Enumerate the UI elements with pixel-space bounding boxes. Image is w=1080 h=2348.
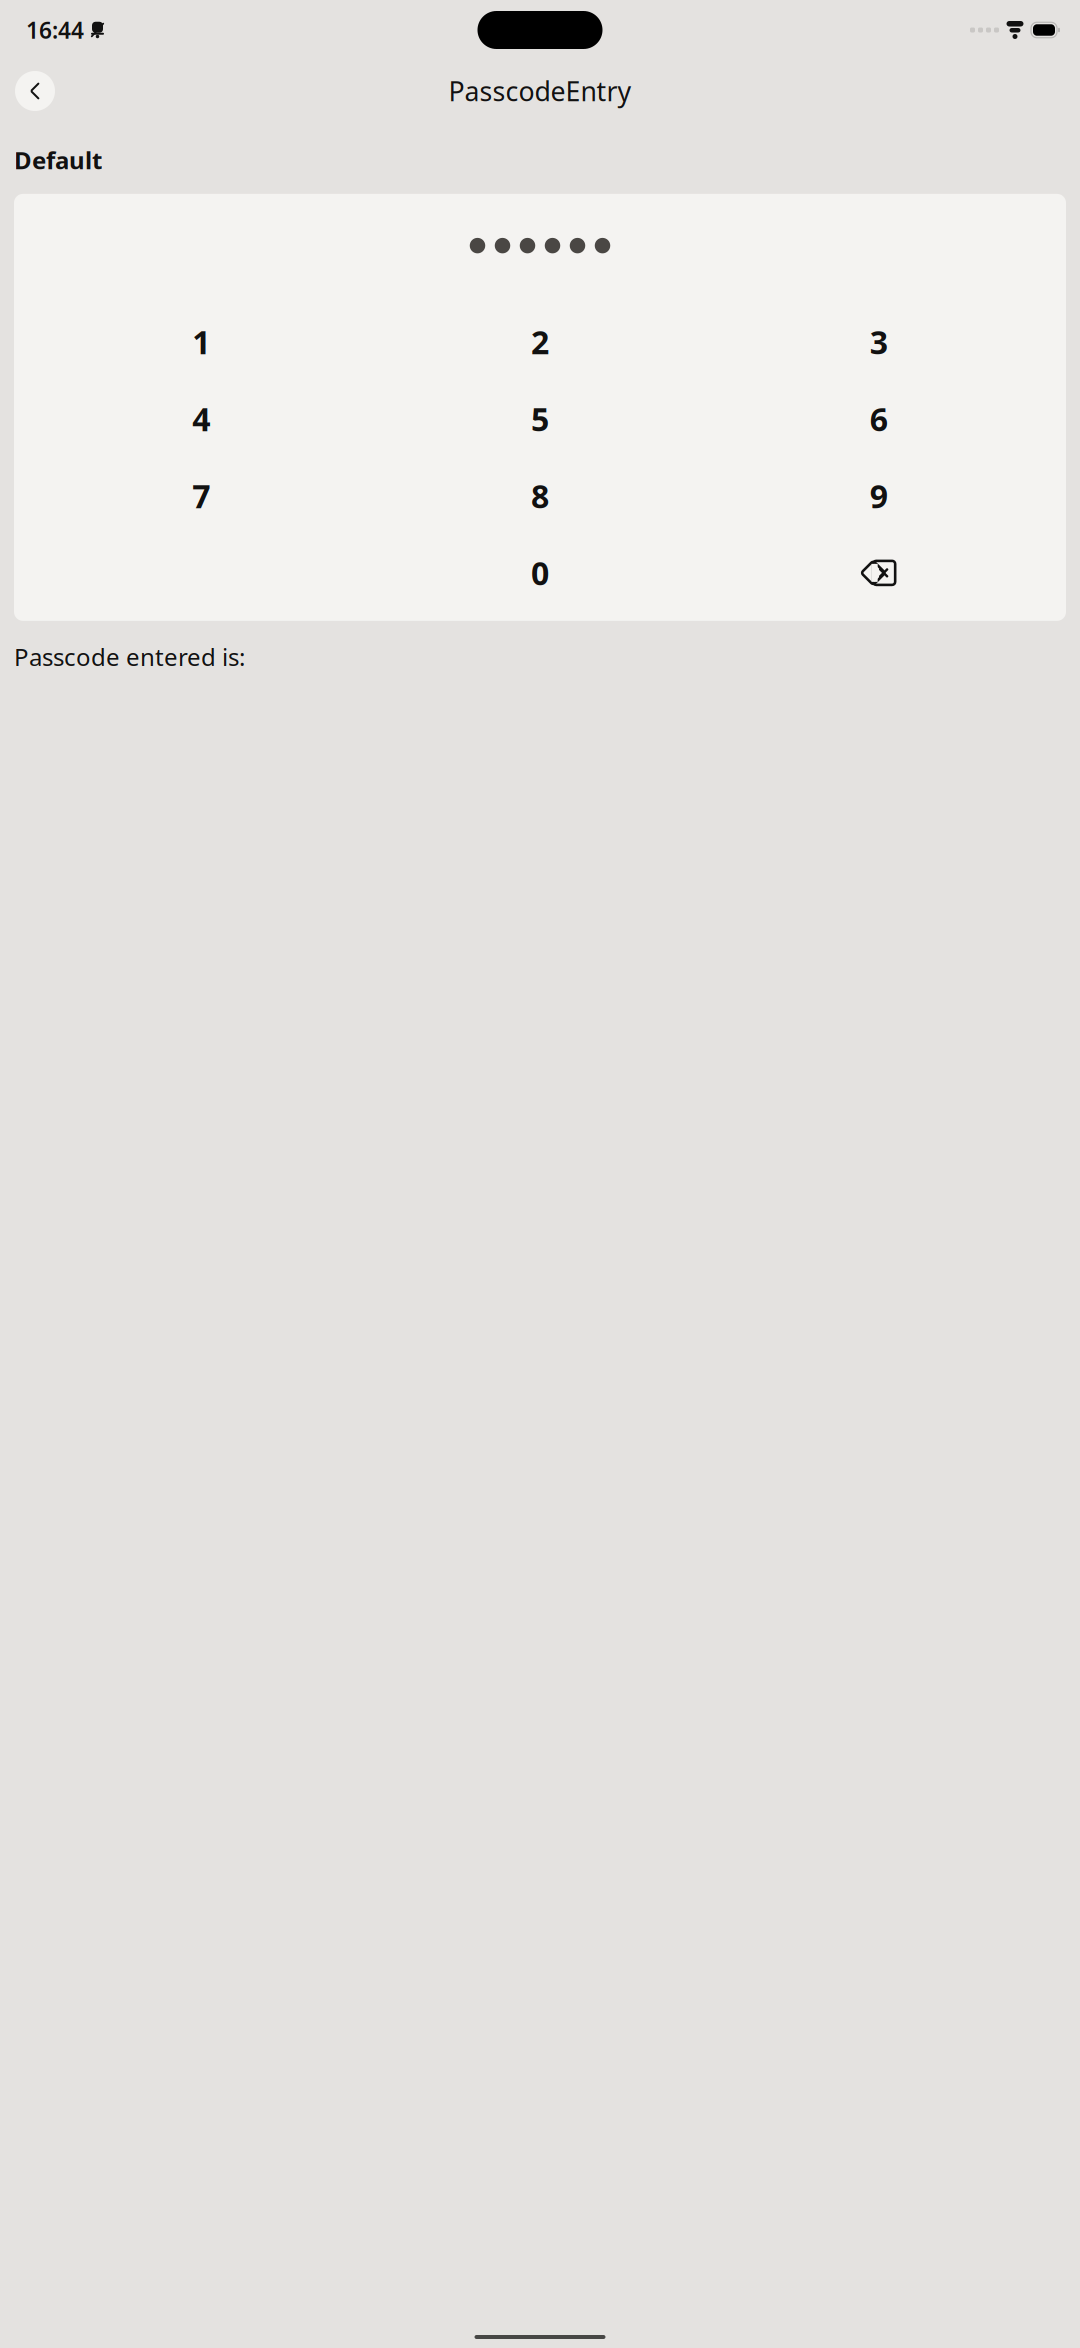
staticText: 5: [531, 398, 549, 440]
button[interactable]: 2: [371, 303, 709, 380]
staticText: PasscodeEntry: [448, 73, 631, 109]
button[interactable]: 9: [709, 457, 1048, 534]
button[interactable]: 1: [32, 303, 371, 380]
button[interactable]: 4: [32, 380, 371, 457]
button[interactable]: 5: [371, 380, 709, 457]
button[interactable]: 6: [709, 380, 1048, 457]
staticText: 3: [870, 321, 888, 363]
staticText: 16:44: [26, 15, 84, 45]
staticText: 9: [870, 475, 888, 517]
button[interactable]: 0: [371, 534, 709, 611]
button[interactable]: 3: [709, 303, 1048, 380]
staticText: 0: [531, 552, 549, 594]
staticText: 7: [192, 475, 210, 517]
staticText: 6: [870, 398, 888, 440]
staticText: Passcode entered is:: [14, 641, 245, 673]
staticText: Default: [14, 144, 102, 176]
staticText: 1: [192, 321, 210, 363]
button[interactable]: Delete: [709, 534, 1048, 611]
button[interactable]: Back: [15, 71, 55, 111]
staticText: 4: [192, 398, 210, 440]
staticText: 8: [531, 475, 549, 517]
button[interactable]: 8: [371, 457, 709, 534]
button[interactable]: 7: [32, 457, 371, 534]
staticText: 2: [531, 321, 549, 363]
